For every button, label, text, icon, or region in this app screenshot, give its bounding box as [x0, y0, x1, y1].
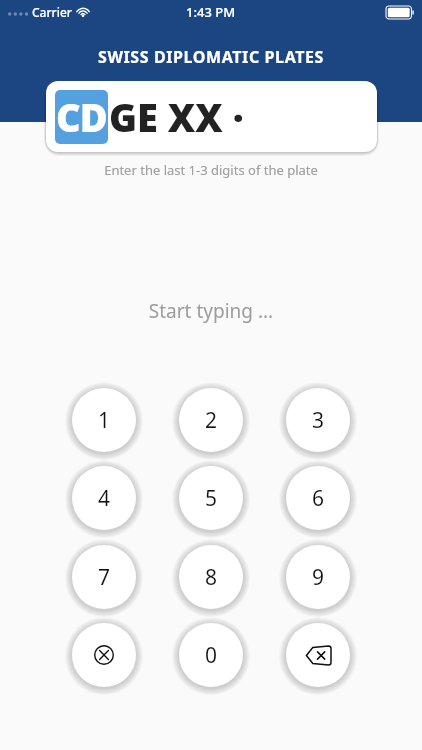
button[interactable]: 6: [286, 466, 350, 530]
staticText: 9: [312, 563, 325, 592]
staticText: 5: [205, 484, 218, 513]
staticText: CD: [56, 91, 107, 143]
button[interactable]: 1: [72, 388, 136, 452]
button[interactable]: Clear: [72, 623, 136, 687]
staticText: Start typing ...: [0, 298, 422, 324]
staticText: 8: [205, 563, 218, 592]
staticText: 7: [98, 563, 111, 592]
staticText: SWISS DIPLOMATIC PLATES: [0, 46, 422, 68]
staticText: 2: [205, 406, 218, 435]
button[interactable]: 2: [179, 388, 243, 452]
button[interactable]: CD: [46, 81, 377, 152]
staticText: 6: [312, 484, 325, 513]
button[interactable]: Backspace: [286, 623, 350, 687]
staticText: 1: [98, 406, 111, 435]
staticText: 0: [205, 641, 218, 670]
button[interactable]: 5: [179, 466, 243, 530]
staticText: 3: [312, 406, 325, 435]
button[interactable]: 9: [286, 545, 350, 609]
button[interactable]: 8: [179, 545, 243, 609]
button[interactable]: 4: [72, 466, 136, 530]
staticText: 1:43 PM: [186, 3, 236, 21]
staticText: Carrier: [32, 4, 72, 20]
button[interactable]: 0: [179, 623, 243, 687]
staticText: 4: [98, 484, 111, 513]
button[interactable]: 7: [72, 545, 136, 609]
button[interactable]: 3: [286, 388, 350, 452]
staticText: GE XX ·: [109, 91, 244, 143]
staticText: Enter the last 1-3 digits of the plate: [0, 161, 422, 179]
